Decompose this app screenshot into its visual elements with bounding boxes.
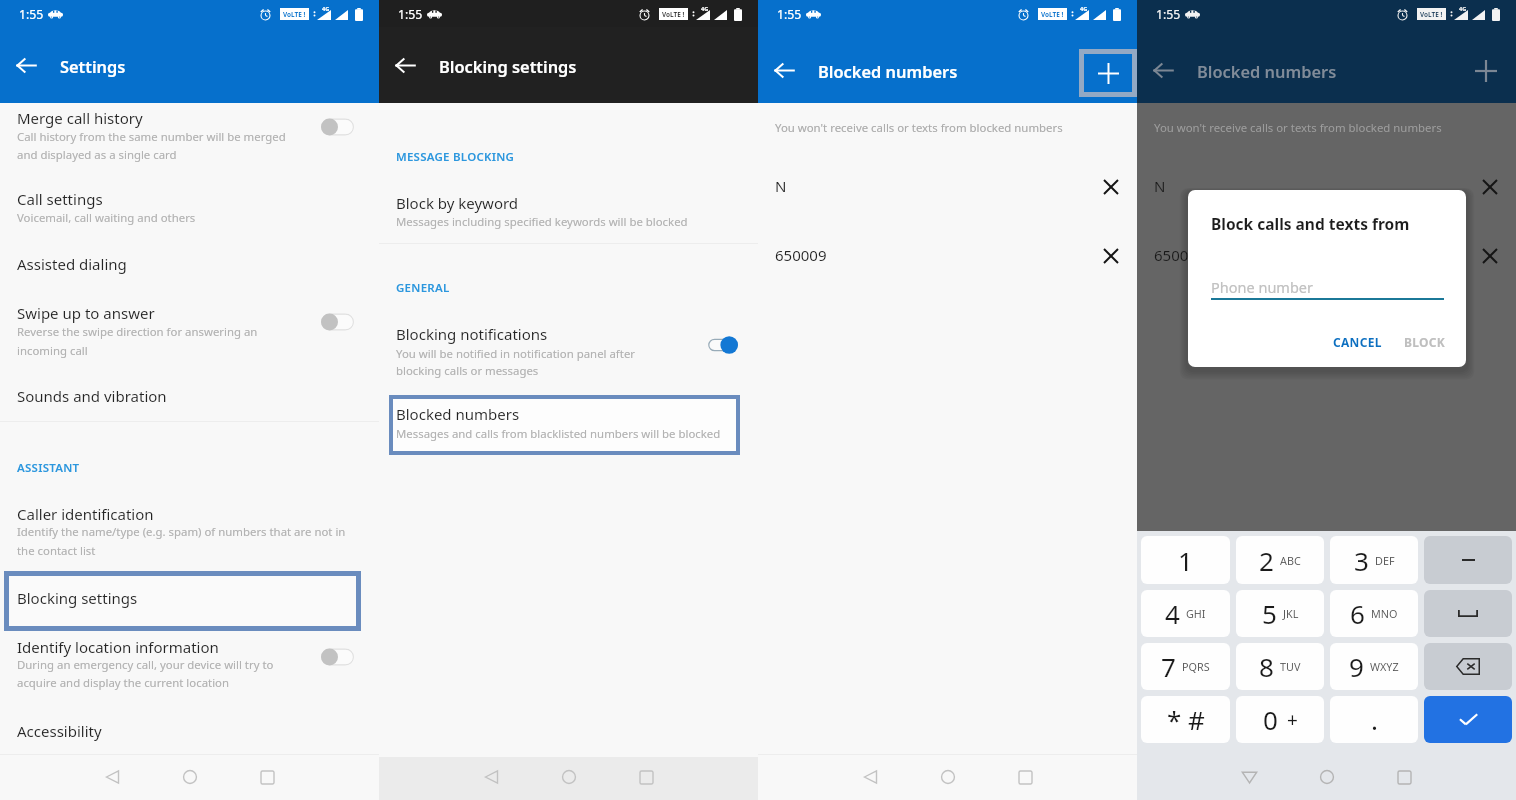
button[interactable]: On xyxy=(708,334,738,356)
staticText: BLOCK xyxy=(1404,334,1446,350)
button[interactable]: Merge call history xyxy=(0,103,379,172)
staticText: . xyxy=(1371,702,1378,737)
staticText: 4G xyxy=(701,5,709,13)
staticText: MNO xyxy=(1371,606,1398,621)
button[interactable]: Backspace xyxy=(1424,643,1512,690)
staticText: VoLTE ! xyxy=(1041,10,1064,19)
button[interactable]: Space xyxy=(1424,590,1512,637)
staticText: CANCEL xyxy=(1333,334,1382,350)
button[interactable]: BLOCK xyxy=(1401,329,1449,354)
staticText: 0 xyxy=(1263,702,1278,737)
staticText: 2 xyxy=(1259,543,1274,578)
staticText: You won't receive calls or texts from bl… xyxy=(775,120,1063,136)
button[interactable]: 5 JKL xyxy=(1236,590,1324,637)
staticText: Caller identification xyxy=(17,504,154,524)
button[interactable]: Back xyxy=(471,757,511,797)
button[interactable]: Unblock 650009 xyxy=(1096,241,1126,271)
button[interactable]: Recent apps xyxy=(1005,757,1045,797)
staticText: 1:55 xyxy=(19,6,44,23)
button[interactable]: Navigate up xyxy=(768,54,801,87)
button[interactable]: Sounds and vibration xyxy=(0,376,379,420)
button[interactable]: Swipe up to answer xyxy=(0,296,379,368)
button[interactable]: Star hash xyxy=(1141,696,1230,743)
staticText: Swipe up to answer xyxy=(17,303,155,323)
button[interactable]: Home xyxy=(928,757,968,797)
button[interactable]: Call settings xyxy=(0,180,379,235)
staticText: ASSISTANT xyxy=(17,460,80,476)
button[interactable]: Home xyxy=(549,757,589,797)
button[interactable]: 0 plus xyxy=(1236,696,1324,743)
staticText: N xyxy=(775,176,787,196)
staticText: Sounds and vibration xyxy=(17,386,167,406)
button[interactable]: 3 DEF xyxy=(1330,536,1418,584)
button[interactable]: Add blocked number xyxy=(1079,49,1137,97)
staticText: Blocked numbers xyxy=(396,404,520,424)
button[interactable]: Period xyxy=(1330,696,1418,743)
staticText: Identify the name/type (e.g. spam) of nu… xyxy=(17,524,346,540)
button[interactable]: Hide keyboard xyxy=(1229,757,1269,797)
button[interactable]: Assisted dialing xyxy=(0,243,379,288)
staticText: Accessibility xyxy=(17,721,102,741)
staticText: incoming call xyxy=(17,343,88,359)
button[interactable]: Off xyxy=(321,311,354,333)
staticText: 1:55 xyxy=(398,6,423,23)
button[interactable] xyxy=(389,395,740,455)
button[interactable]: Navigate up xyxy=(10,49,43,82)
staticText: Blocked numbers xyxy=(1197,60,1337,82)
button[interactable]: Confirm xyxy=(1424,696,1512,743)
staticText: * # xyxy=(1167,702,1205,737)
button[interactable]: Accessibility xyxy=(0,710,379,752)
button[interactable]: Recent apps xyxy=(1384,757,1424,797)
staticText: 4G xyxy=(1459,5,1467,13)
button[interactable]: Off xyxy=(321,116,354,138)
button[interactable]: Blocking notifications xyxy=(379,315,758,392)
staticText: acquire and display the current location xyxy=(17,675,230,691)
staticText: VoLTE ! xyxy=(1420,10,1443,19)
button[interactable]: Home xyxy=(1307,757,1347,797)
button[interactable]: Off xyxy=(321,646,354,668)
button[interactable]: Back xyxy=(850,757,890,797)
staticText: 1 xyxy=(1178,543,1193,578)
staticText: N xyxy=(1154,176,1166,196)
button[interactable]: 7 PQRS xyxy=(1141,643,1230,690)
staticText: Blocking settings xyxy=(17,588,138,608)
staticText: 650009 xyxy=(775,245,827,265)
button[interactable]: Caller identification xyxy=(0,495,379,568)
button[interactable]: Dash xyxy=(1424,536,1512,584)
button[interactable]: Recent apps xyxy=(247,757,287,797)
staticText: Messages including specified keywords wi… xyxy=(396,214,688,230)
staticText: Blocking settings xyxy=(439,55,577,77)
staticText: the contact list xyxy=(17,543,96,559)
staticText: MESSAGE BLOCKING xyxy=(396,149,515,165)
staticText: You will be notified in notification pan… xyxy=(396,346,636,362)
button[interactable]: Unblock N xyxy=(1096,172,1126,202)
staticText: TUV xyxy=(1280,659,1301,674)
button[interactable]: Home xyxy=(170,757,210,797)
staticText: Identify location information xyxy=(17,637,219,657)
button[interactable]: 2 ABC xyxy=(1236,536,1324,584)
button[interactable]: Navigate up xyxy=(389,49,422,82)
staticText: blocking calls or messages xyxy=(396,363,539,379)
button[interactable]: Recent apps xyxy=(626,757,666,797)
button[interactable]: 650009 xyxy=(758,228,1137,283)
button[interactable]: Back xyxy=(92,757,132,797)
button[interactable]: CANCEL xyxy=(1329,329,1385,354)
staticText: JKL xyxy=(1283,606,1299,621)
button[interactable]: 4 GHI xyxy=(1141,590,1230,637)
staticText: Block calls and texts from xyxy=(1211,213,1410,234)
button[interactable]: 1 xyxy=(1141,536,1230,584)
staticText: Call history from the same number will b… xyxy=(17,129,286,145)
staticText: and displayed as a single card xyxy=(17,147,177,163)
button[interactable]: 9 WXYZ xyxy=(1330,643,1418,690)
button[interactable] xyxy=(4,571,361,631)
button[interactable]: Identify location information xyxy=(0,634,379,700)
button[interactable]: 8 TUV xyxy=(1236,643,1324,690)
staticText: Blocked numbers xyxy=(818,60,958,82)
staticText: 6 xyxy=(1350,596,1365,631)
button[interactable]: N xyxy=(758,160,1137,215)
staticText: Blocking notifications xyxy=(396,324,548,344)
staticText: GHI xyxy=(1186,606,1206,621)
staticText: Messages and calls from blacklisted numb… xyxy=(396,426,721,442)
button[interactable]: Block by keyword xyxy=(379,185,758,242)
button[interactable]: 6 MNO xyxy=(1330,590,1418,637)
